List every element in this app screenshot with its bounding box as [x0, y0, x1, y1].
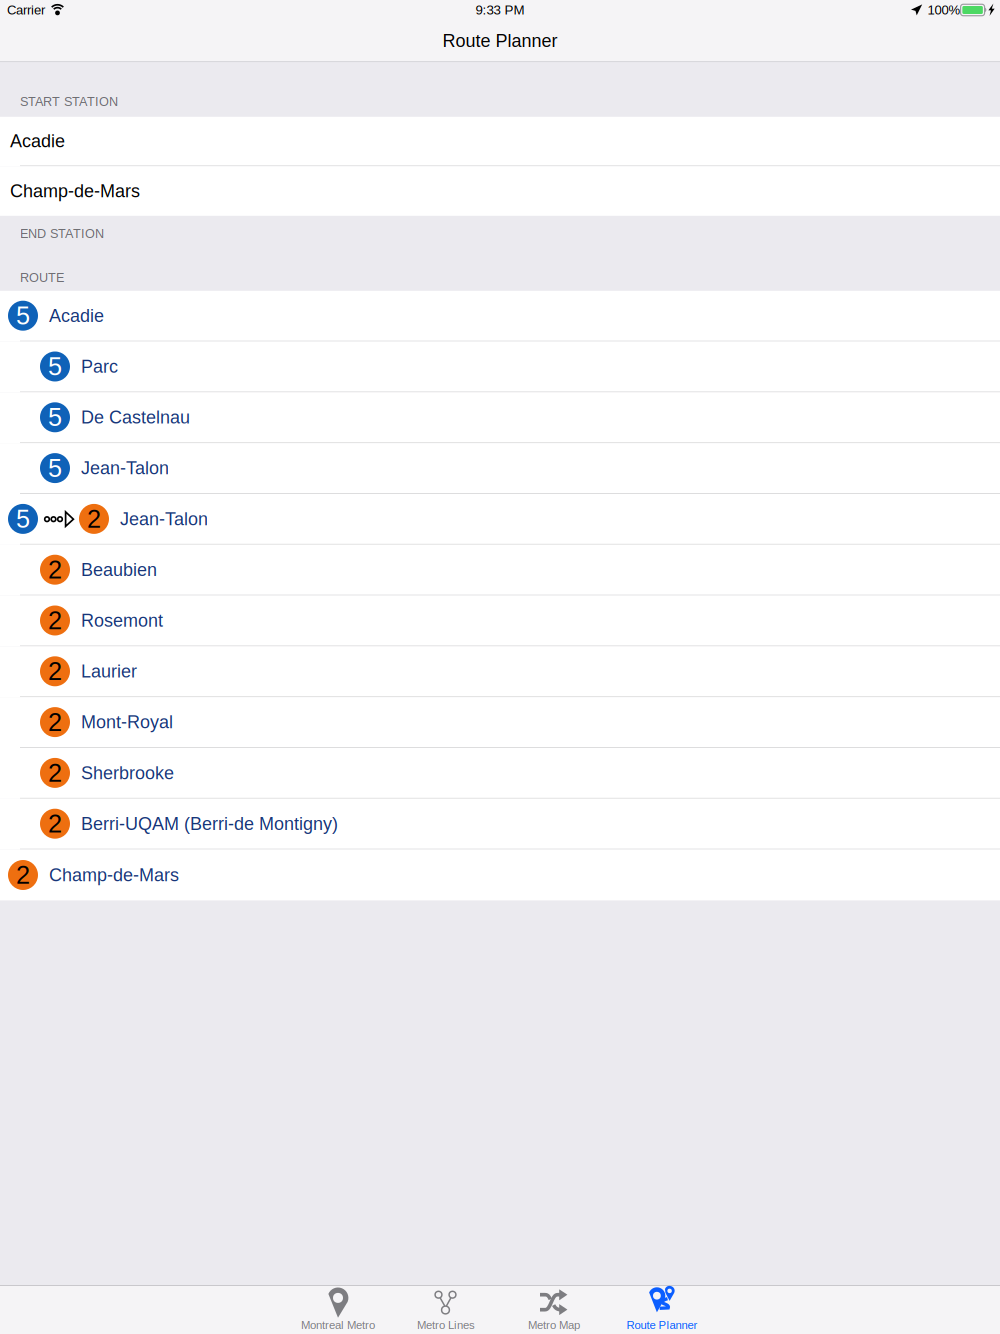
staticText: 2	[87, 505, 101, 533]
button[interactable]: 2	[0, 748, 1000, 799]
staticText: 2	[48, 759, 62, 787]
staticText: Route Planner	[442, 31, 557, 51]
button[interactable]: 5	[0, 342, 1000, 392]
staticText: Montreal Metro	[301, 1319, 375, 1331]
button[interactable]: 2	[0, 850, 1000, 900]
staticText: Mont-Royal	[81, 712, 173, 732]
staticText: Route Planner	[626, 1319, 697, 1331]
staticText: Carrier	[7, 3, 45, 17]
staticText: Jean-Talon	[81, 458, 169, 478]
button[interactable]: 5	[0, 494, 1000, 545]
staticText: 5	[16, 301, 30, 330]
staticText: Metro Map	[528, 1319, 580, 1331]
staticText: 100%	[928, 3, 961, 17]
button[interactable]: 2	[0, 697, 1000, 748]
staticText: 5	[16, 505, 30, 533]
staticText: 2	[48, 708, 62, 736]
staticText: Rosemont	[81, 610, 163, 630]
button[interactable]: Metro Lines	[392, 1286, 500, 1334]
staticText: Parc	[81, 356, 118, 376]
staticText: 2	[16, 861, 30, 889]
staticText: START STATION	[20, 95, 118, 109]
button[interactable]: Metro Map	[500, 1286, 608, 1334]
staticText: 9:33 PM	[475, 3, 524, 17]
staticText: 5	[48, 403, 62, 431]
staticText: 2	[48, 809, 62, 838]
staticText: Champ-de-Mars	[10, 181, 140, 201]
button[interactable]: 5	[0, 291, 1000, 342]
button[interactable]: 5	[0, 443, 1000, 494]
button[interactable]: 2	[0, 596, 1000, 646]
staticText: Laurier	[81, 661, 137, 681]
button[interactable]: Montreal Metro	[284, 1286, 392, 1334]
button[interactable]: 5	[0, 392, 1000, 443]
staticText: ROUTE	[20, 271, 64, 285]
button[interactable]: 2	[0, 646, 1000, 697]
staticText: 2	[48, 657, 62, 685]
staticText: 5	[48, 454, 62, 482]
staticText: 5	[48, 352, 62, 381]
button[interactable]: Champ-de-Mars	[0, 166, 1000, 216]
staticText: Acadie	[10, 131, 65, 151]
staticText: END STATION	[20, 227, 104, 241]
staticText: De Castelnau	[81, 407, 190, 427]
staticText: 2	[48, 555, 62, 584]
button[interactable]: 2	[0, 799, 1000, 850]
staticText: Sherbrooke	[81, 763, 174, 783]
staticText: 2	[48, 606, 62, 635]
staticText: Acadie	[49, 306, 104, 326]
button[interactable]: Route Planner	[608, 1286, 716, 1334]
staticText: Beaubien	[81, 560, 157, 580]
staticText: Jean-Talon	[120, 509, 208, 529]
button[interactable]: 2	[0, 545, 1000, 596]
staticText: Metro Lines	[417, 1319, 475, 1331]
staticText: Champ-de-Mars	[49, 865, 179, 885]
button[interactable]: Acadie	[0, 117, 1000, 166]
staticText: Berri-UQAM (Berri-de Montigny)	[81, 814, 338, 834]
